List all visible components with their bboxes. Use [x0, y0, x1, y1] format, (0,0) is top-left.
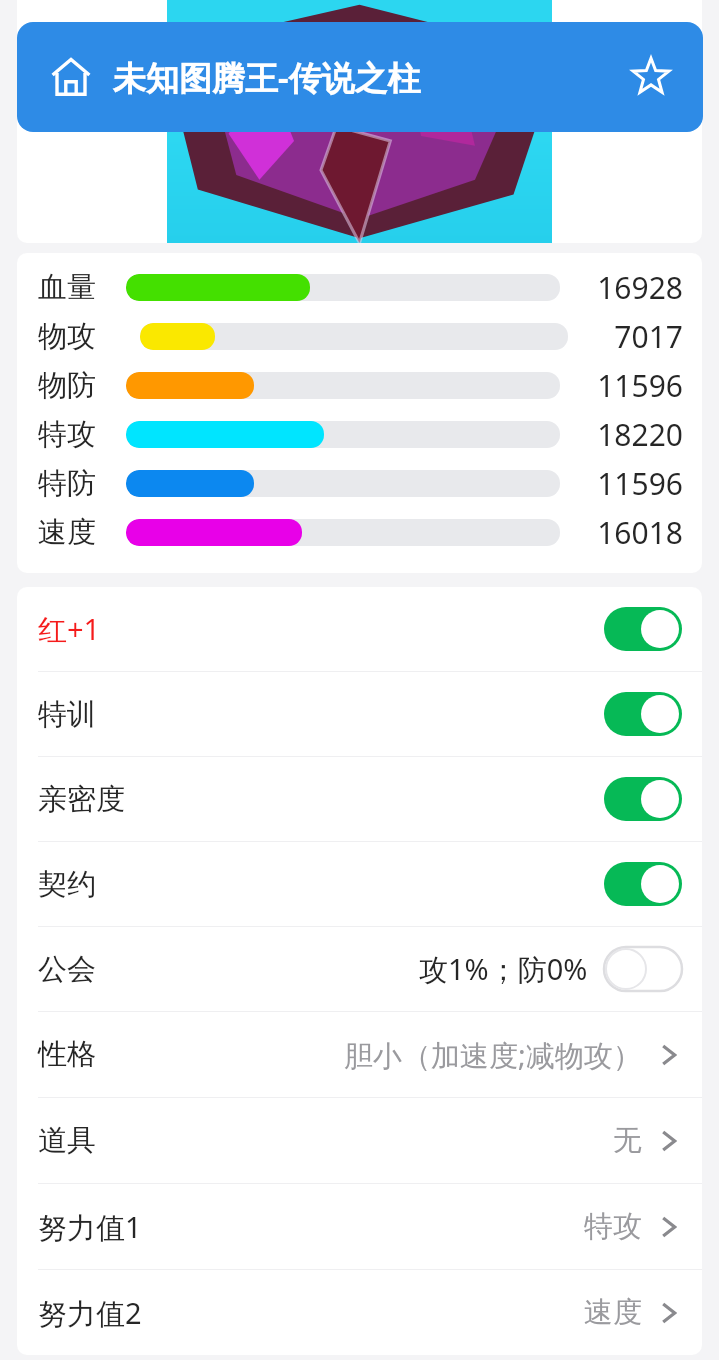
button[interactable]: 红+1	[17, 587, 702, 671]
staticText: 7017	[568, 316, 683, 357]
button[interactable]: 特训	[17, 672, 702, 756]
staticText: 契约	[38, 866, 96, 903]
staticText: 18220	[568, 414, 683, 455]
button[interactable]: 契约	[17, 842, 702, 926]
staticText: 无	[613, 1122, 642, 1159]
staticText: 攻1%；防0%	[419, 949, 588, 989]
staticText: 亲密度	[38, 781, 125, 818]
staticText: 物攻	[38, 318, 126, 355]
staticText: 速度	[584, 1294, 642, 1331]
staticText: 16018	[568, 512, 683, 553]
staticText: 11596	[568, 463, 683, 504]
staticText: 胆小（加速度;减物攻）	[344, 1035, 642, 1075]
staticText: 道具	[38, 1122, 96, 1159]
button[interactable]: Home	[45, 51, 97, 103]
staticText: 努力值1	[38, 1207, 142, 1247]
staticText: 特防	[38, 465, 126, 502]
staticText: 公会	[38, 951, 96, 988]
button[interactable]: 努力值1	[17, 1184, 702, 1269]
staticText: 16928	[568, 267, 683, 308]
staticText: 红+1	[38, 609, 101, 649]
staticText: 未知图腾王-传说之柱	[113, 55, 421, 100]
button[interactable]: 性格	[17, 1012, 702, 1097]
button[interactable]: 亲密度	[17, 757, 702, 841]
staticText: 性格	[38, 1036, 96, 1073]
staticText: 特训	[38, 696, 96, 733]
staticText: 特攻	[584, 1208, 642, 1245]
staticText: 血量	[38, 269, 126, 306]
button[interactable]: 道具	[17, 1098, 702, 1183]
button[interactable]: 努力值2	[17, 1270, 702, 1355]
staticText: 努力值2	[38, 1293, 142, 1333]
button[interactable]: 公会	[17, 927, 702, 1011]
staticText: 物防	[38, 367, 126, 404]
button[interactable]: Favorite	[625, 51, 677, 103]
staticText: 速度	[38, 514, 126, 551]
staticText: 11596	[568, 365, 683, 406]
staticText: 特攻	[38, 416, 126, 453]
